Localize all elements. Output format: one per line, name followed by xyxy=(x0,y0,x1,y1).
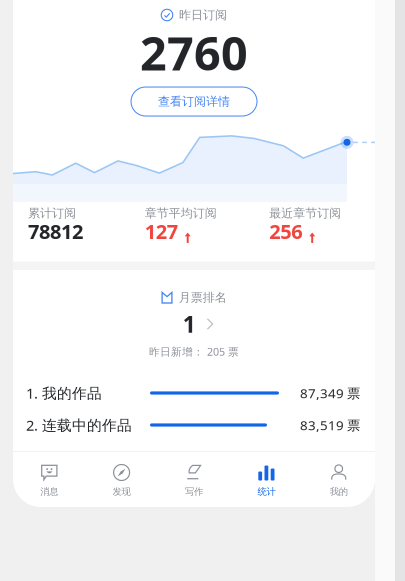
staticText: 78812 xyxy=(28,218,83,245)
staticText: 83,519 票 xyxy=(300,416,360,434)
staticText: 1. 我的作品 xyxy=(26,383,102,403)
button[interactable]: 统计 xyxy=(230,456,303,505)
staticText: 2760 xyxy=(140,21,248,83)
button[interactable]: 消息 xyxy=(13,456,85,505)
staticText: 查看订阅详情 xyxy=(158,94,230,109)
button[interactable]: 发现 xyxy=(85,456,158,505)
staticText: 我的 xyxy=(330,486,348,497)
staticText: 昨日新增： 205 票 xyxy=(149,344,239,359)
staticText: 87,349 票 xyxy=(300,384,360,402)
staticText: 消息 xyxy=(40,486,58,497)
button[interactable]: 查看订阅详情 xyxy=(131,87,257,116)
staticText: 发现 xyxy=(113,486,131,497)
staticText: 2. 连载中的作品 xyxy=(26,415,132,435)
staticText: 127 xyxy=(145,218,178,245)
staticText: 写作 xyxy=(185,486,203,497)
button[interactable]: 1 xyxy=(183,313,213,335)
button[interactable]: 我的 xyxy=(303,456,375,505)
staticText: 昨日订阅 xyxy=(179,8,227,22)
staticText: 月票排名 xyxy=(179,290,227,305)
staticText: 统计 xyxy=(257,486,275,497)
staticText: 最近章节订阅 xyxy=(269,206,341,221)
staticText: 256 xyxy=(269,218,302,245)
button[interactable]: 写作 xyxy=(158,456,230,505)
staticText: 累计订阅 xyxy=(28,206,76,221)
staticText: 章节平均订阅 xyxy=(145,206,217,221)
staticText: 1 xyxy=(183,309,196,339)
